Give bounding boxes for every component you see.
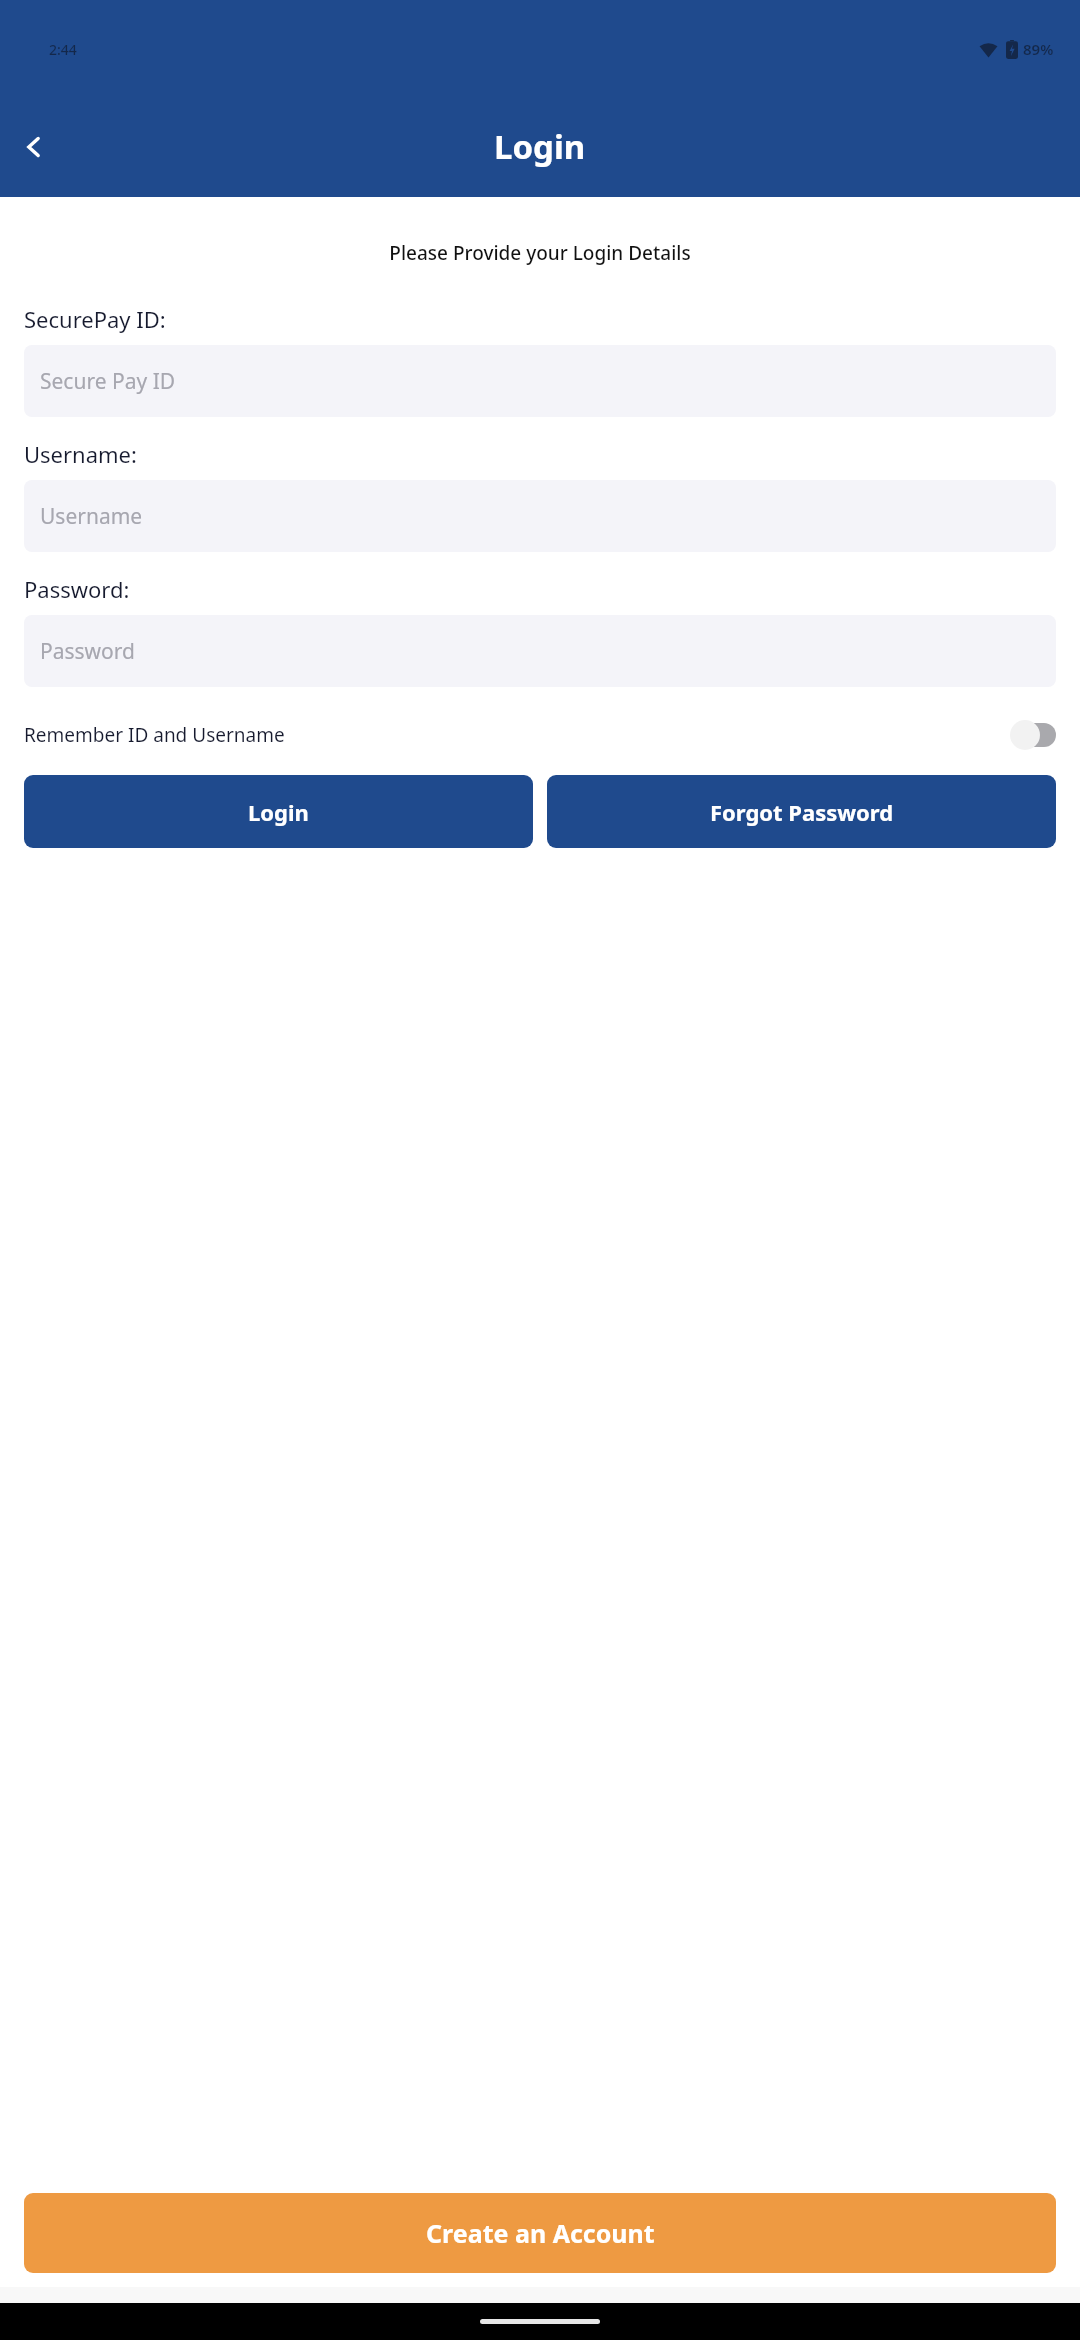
- staticText: Username:: [24, 439, 137, 469]
- staticText: SecurePay ID:: [24, 304, 166, 334]
- staticText: Login: [494, 124, 586, 169]
- staticText: 2:44: [49, 40, 77, 59]
- button[interactable]: Remember ID and Username toggle: [1010, 720, 1056, 750]
- staticText: Remember ID and Username: [24, 722, 1010, 748]
- staticText: Password: [40, 637, 135, 666]
- staticText: Secure Pay ID: [40, 367, 176, 396]
- staticText: Please Provide your Login Details: [0, 240, 1080, 266]
- staticText: Password:: [24, 574, 130, 604]
- button[interactable]: Login: [24, 775, 533, 848]
- staticText: Login: [248, 797, 309, 827]
- button[interactable]: Create an Account: [24, 2193, 1056, 2273]
- staticText: Username: [40, 502, 143, 531]
- button[interactable]: Secure Pay ID: [24, 345, 1056, 417]
- button[interactable]: Username: [24, 480, 1056, 552]
- staticText: Create an Account: [426, 2216, 655, 2250]
- button[interactable]: Remember ID and Username: [24, 712, 1056, 758]
- button[interactable]: Back: [10, 123, 58, 171]
- staticText: 89%: [1023, 39, 1054, 59]
- button[interactable]: Forgot Password: [547, 775, 1056, 848]
- staticText: Forgot Password: [710, 797, 894, 827]
- button[interactable]: Password: [24, 615, 1056, 687]
